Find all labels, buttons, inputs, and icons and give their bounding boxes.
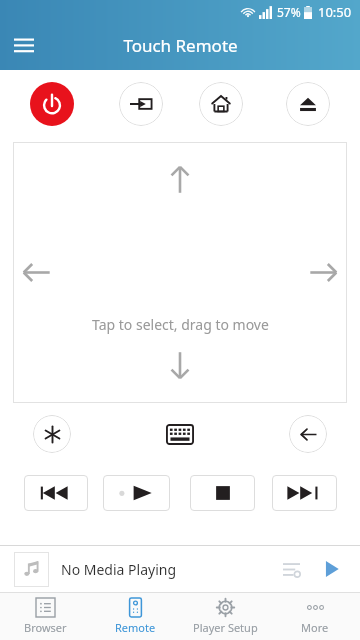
button[interactable]: Next — [272, 475, 337, 511]
staticText: 57% — [277, 4, 301, 20]
button[interactable]: Previous — [24, 475, 88, 511]
staticText: No Media Playing — [61, 560, 177, 579]
button[interactable]: Input — [119, 82, 163, 126]
staticText: 10:50 — [318, 3, 352, 21]
button[interactable]: Asterisk — [33, 415, 71, 453]
button[interactable]: Back — [289, 415, 327, 453]
staticText: Touch Remote — [123, 34, 238, 57]
button[interactable]: No Media Playing — [0, 546, 360, 592]
button[interactable]: Touch pad — [13, 142, 347, 403]
button[interactable]: Playlist — [274, 552, 308, 586]
button[interactable]: Remote — [90, 593, 180, 640]
button[interactable]: Home — [199, 82, 243, 126]
button[interactable]: Power — [30, 82, 74, 126]
staticText: Tap to select, drag to move — [92, 315, 269, 334]
button[interactable]: Eject — [286, 82, 330, 126]
button[interactable]: Browser — [0, 593, 90, 640]
staticText: Player Setup — [193, 620, 258, 635]
button[interactable]: Play — [314, 551, 350, 587]
button[interactable]: Play — [103, 475, 170, 511]
button[interactable]: Keyboard — [160, 417, 200, 451]
button[interactable]: Menu — [0, 22, 48, 70]
staticText: Remote — [115, 620, 156, 635]
staticText: More — [301, 620, 329, 635]
staticText: Browser — [24, 620, 67, 635]
button[interactable]: More — [270, 593, 360, 640]
button[interactable]: Stop — [190, 475, 255, 511]
button[interactable]: Player Setup — [180, 593, 270, 640]
